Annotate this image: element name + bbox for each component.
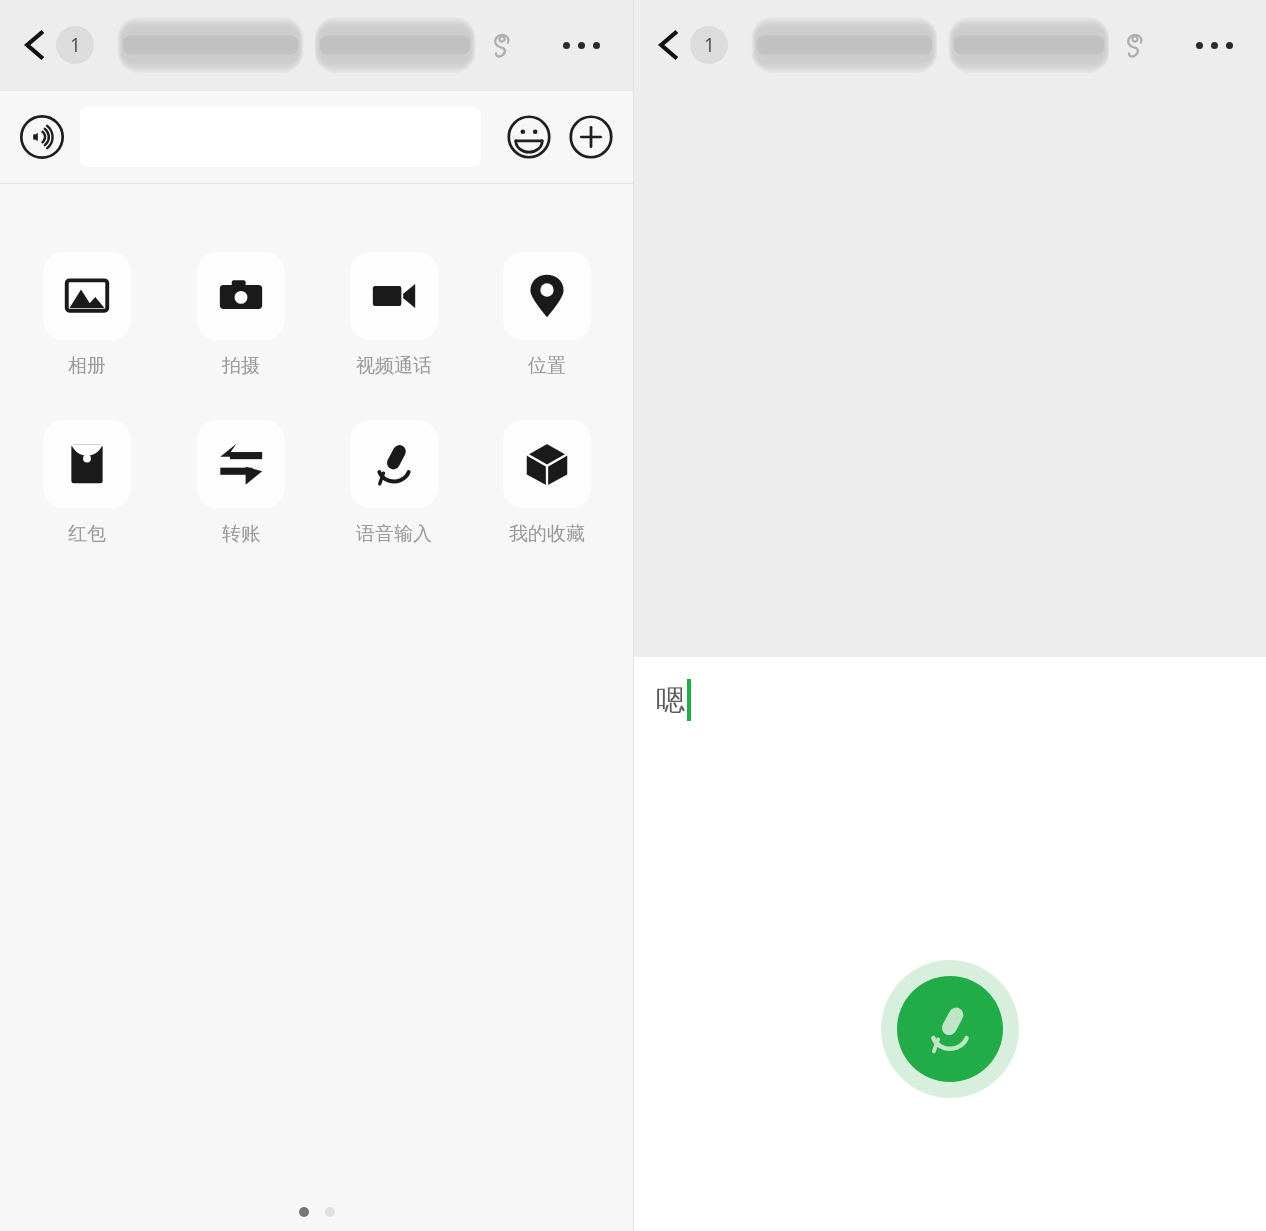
button[interactable]: More attachments — [565, 111, 617, 163]
button[interactable]: 相册 — [10, 252, 164, 378]
staticText: 1 — [704, 32, 715, 58]
button[interactable]: Earpiece mode — [1112, 22, 1158, 68]
staticText: 语音输入 — [356, 522, 432, 546]
button[interactable]: Voice input — [16, 111, 68, 163]
staticText: 位置 — [528, 354, 566, 378]
staticText: 拍摄 — [222, 354, 260, 378]
button[interactable]: More options — [1188, 19, 1240, 71]
staticText: 相册 — [68, 354, 106, 378]
staticText: 嗯 — [656, 682, 685, 719]
button[interactable]: 我的收藏 — [470, 420, 623, 546]
button[interactable]: 红包 — [10, 420, 164, 546]
staticText: 我的收藏 — [509, 522, 585, 546]
button[interactable]: Emoji — [503, 111, 555, 163]
staticText: 红包 — [68, 522, 106, 546]
button[interactable]: 位置 — [470, 252, 623, 378]
button[interactable]: 拍摄 — [164, 252, 317, 378]
button[interactable]: Record voice — [881, 960, 1019, 1098]
button[interactable]: Earpiece mode — [479, 22, 525, 68]
button[interactable]: Back — [648, 18, 736, 72]
staticText: 1 — [70, 32, 81, 58]
button[interactable]: Back — [14, 18, 102, 72]
staticText: 转账 — [222, 522, 260, 546]
button[interactable]: More options — [555, 19, 607, 71]
staticText: 视频通话 — [356, 354, 432, 378]
button[interactable]: 视频通话 — [317, 252, 470, 378]
button[interactable]: 转账 — [164, 420, 317, 546]
button[interactable]: 语音输入 — [317, 420, 470, 546]
